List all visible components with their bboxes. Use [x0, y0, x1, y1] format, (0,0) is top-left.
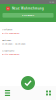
staticText: Bitte auswählen	[2, 32, 19, 35]
button[interactable]: ALLGEMEIN	[2, 13, 53, 18]
button[interactable]: Apps	[42, 86, 54, 100]
staticText: Zeitraum	[2, 38, 11, 41]
staticText: ✕	[7, 7, 9, 10]
staticText: ALLGEMEIN	[21, 14, 34, 17]
button[interactable]: Menü	[1, 86, 13, 100]
staticText: Verfahren	[2, 28, 12, 31]
staticText: 01.09.2023 - 30.09.2023	[2, 42, 25, 45]
staticText: Bitte auswählen	[2, 53, 19, 56]
staticText: 12:30	[49, 1, 54, 3]
staticText: Neue Wahrnehmung	[12, 7, 44, 10]
button[interactable]: Speichern	[21, 76, 35, 90]
button[interactable]: Schließen	[4, 4, 12, 12]
staticText: Arbeitsorte	[2, 49, 14, 52]
